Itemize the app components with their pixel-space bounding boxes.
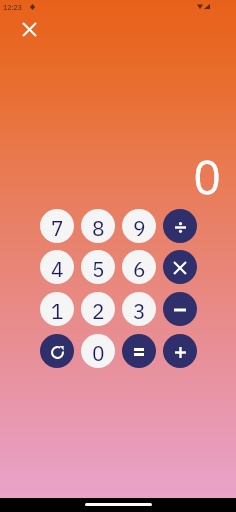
button[interactable]: Clear [40,334,74,368]
button[interactable]: 4 [40,250,74,284]
button[interactable]: Close [17,17,41,41]
button[interactable]: 7 [40,209,74,243]
staticText: 2 [92,297,105,324]
button[interactable]: 3 [122,292,156,326]
staticText: 12:23 [3,3,22,12]
staticText: 0 [193,146,222,206]
staticText: 0 [92,339,105,366]
staticText: 4 [51,255,64,282]
staticText: 8 [92,214,105,241]
staticText: 3 [133,297,146,324]
button[interactable]: 8 [81,209,115,243]
staticText: 5 [92,255,105,282]
button[interactable]: Multiply [163,250,197,284]
button[interactable]: 2 [81,292,115,326]
button[interactable]: 1 [40,292,74,326]
staticText: 1 [51,297,64,324]
button[interactable]: 9 [122,209,156,243]
button[interactable]: Subtract [163,292,197,326]
button[interactable]: 6 [122,250,156,284]
staticText: 7 [51,214,64,241]
button[interactable]: 0 [81,334,115,368]
staticText: 6 [133,255,146,282]
button[interactable]: Divide [163,209,197,243]
button[interactable]: Add [163,334,197,368]
staticText: 9 [133,214,146,241]
button[interactable]: 5 [81,250,115,284]
button[interactable]: Equals [122,334,156,368]
